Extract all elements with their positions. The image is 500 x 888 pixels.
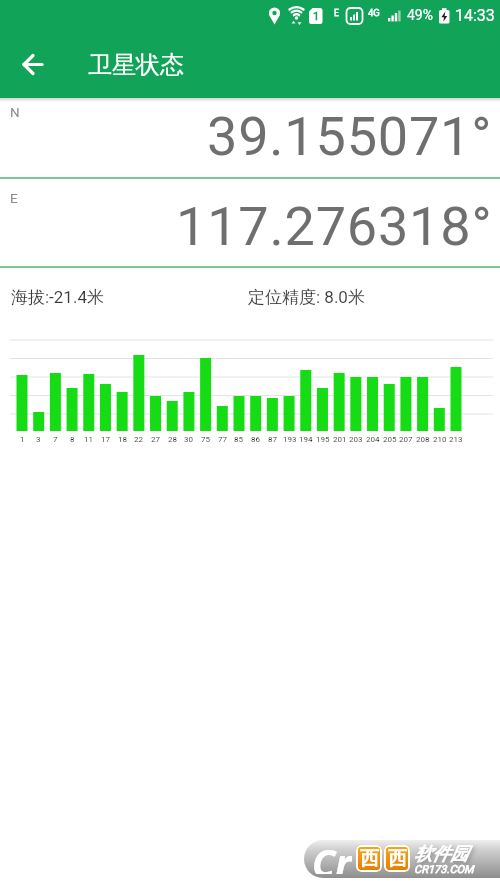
staticText: 22 xyxy=(134,435,143,444)
staticText: 204 xyxy=(366,435,380,444)
staticText: 18 xyxy=(118,435,127,444)
staticText: 85 xyxy=(234,435,243,444)
staticText: 1 xyxy=(20,435,25,444)
staticText: 27 xyxy=(151,435,160,444)
staticText: 210 xyxy=(433,435,447,444)
staticText: 201 xyxy=(333,435,347,444)
staticText: 卫星状态 xyxy=(88,50,184,80)
staticText: E xyxy=(10,190,18,206)
staticText: 28 xyxy=(168,435,177,444)
staticText: 海拔:-21.4米 xyxy=(11,287,104,308)
staticText: 77 xyxy=(218,435,227,444)
button[interactable] xyxy=(10,46,54,84)
staticText: 49% xyxy=(407,7,433,23)
staticText: N xyxy=(10,104,20,120)
staticText: 86 xyxy=(251,435,260,444)
staticText: 西 xyxy=(388,847,407,871)
staticText: 195 xyxy=(316,435,330,444)
staticText: 39.155071° xyxy=(207,105,493,168)
staticText: 30 xyxy=(184,435,193,444)
staticText: 17 xyxy=(101,435,110,444)
staticText: Cr xyxy=(312,840,352,874)
staticText: E xyxy=(334,8,339,18)
staticText: 西 xyxy=(360,847,379,871)
staticText: 194 xyxy=(299,435,313,444)
staticText: 软件园 xyxy=(414,843,468,866)
staticText: 208 xyxy=(416,435,430,444)
staticText: 75 xyxy=(201,435,210,444)
staticText: 193 xyxy=(283,435,297,444)
staticText: 14:33 xyxy=(455,6,495,25)
staticText: 205 xyxy=(383,435,397,444)
staticText: 定位精度: 8.0米 xyxy=(248,287,365,308)
staticText: 8 xyxy=(70,435,75,444)
staticText: 207 xyxy=(399,435,413,444)
button[interactable]: Cr xyxy=(304,840,500,878)
staticText: 7 xyxy=(53,435,58,444)
staticText: 117.276318° xyxy=(176,195,493,258)
staticText: 3 xyxy=(36,435,41,444)
staticText: 213 xyxy=(449,435,463,444)
staticText: 1 xyxy=(313,10,320,23)
staticText: 11 xyxy=(84,435,93,444)
staticText: 4G xyxy=(368,7,380,18)
staticText: CR173.COM xyxy=(414,863,474,876)
staticText: 87 xyxy=(268,435,277,444)
staticText: 203 xyxy=(349,435,363,444)
